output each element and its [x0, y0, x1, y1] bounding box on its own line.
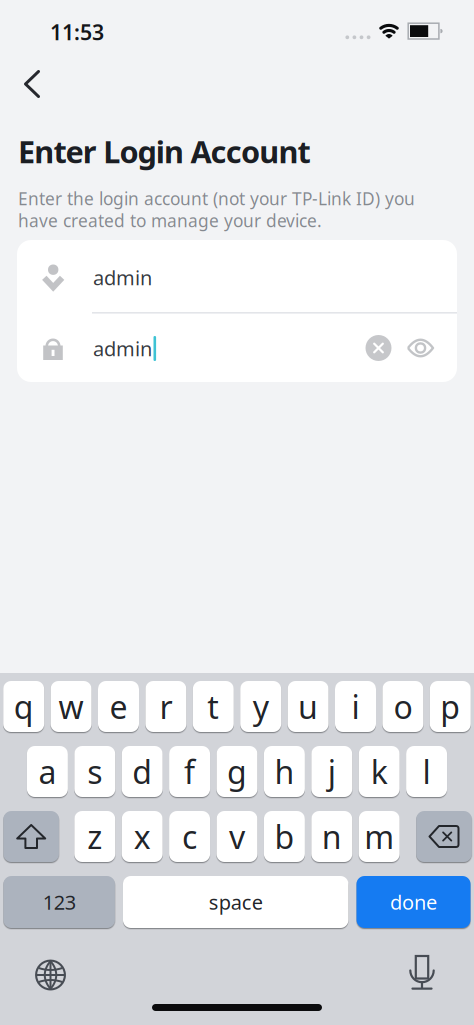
- button[interactable]: h: [264, 746, 305, 797]
- button[interactable]: Clear text: [365, 335, 391, 361]
- staticText: f: [184, 750, 195, 793]
- button[interactable]: r: [145, 681, 186, 732]
- staticText: k: [371, 750, 388, 793]
- staticText: admin: [93, 264, 152, 291]
- staticText: e: [109, 685, 127, 728]
- staticText: x: [134, 815, 151, 858]
- button[interactable]: e: [98, 681, 139, 732]
- button[interactable]: o: [382, 681, 423, 732]
- button[interactable]: Dictation: [405, 956, 439, 990]
- staticText: 11:53: [50, 18, 104, 46]
- button[interactable]: x: [122, 811, 163, 862]
- staticText: p: [440, 685, 460, 728]
- button[interactable]: k: [359, 746, 400, 797]
- button[interactable]: p: [430, 681, 471, 732]
- staticText: z: [87, 815, 102, 858]
- button[interactable]: f: [169, 746, 210, 797]
- staticText: v: [229, 815, 245, 858]
- staticText: g: [227, 750, 247, 793]
- staticText: d: [132, 750, 152, 793]
- button[interactable]: w: [51, 681, 92, 732]
- staticText: a: [38, 750, 56, 793]
- staticText: have created to manage your device.: [18, 209, 322, 232]
- staticText: 123: [43, 889, 76, 915]
- button[interactable]: d: [122, 746, 163, 797]
- staticText: admin: [93, 335, 152, 362]
- button[interactable]: a: [27, 746, 68, 797]
- staticText: Enter Login Account: [18, 131, 311, 172]
- button[interactable]: t: [193, 681, 234, 732]
- staticText: m: [364, 815, 394, 858]
- staticText: done: [390, 889, 437, 915]
- button[interactable]: c: [169, 811, 210, 862]
- staticText: q: [14, 685, 34, 728]
- staticText: i: [351, 685, 359, 728]
- staticText: c: [182, 815, 197, 858]
- button[interactable]: Back: [12, 59, 62, 109]
- staticText: l: [423, 750, 431, 793]
- staticText: o: [393, 685, 412, 728]
- button[interactable]: s: [74, 746, 115, 797]
- button[interactable]: Next keyboard: [35, 960, 65, 990]
- button[interactable]: l: [406, 746, 447, 797]
- staticText: b: [274, 815, 294, 858]
- staticText: Enter the login account (not your TP-Lin…: [18, 187, 415, 210]
- button[interactable]: Password field: [93, 323, 343, 373]
- button[interactable]: m: [359, 811, 400, 862]
- staticText: u: [298, 685, 318, 728]
- staticText: n: [322, 815, 342, 858]
- button[interactable]: done: [356, 876, 470, 928]
- staticText: s: [87, 750, 102, 793]
- staticText: j: [328, 750, 336, 793]
- button[interactable]: i: [335, 681, 376, 732]
- button[interactable]: j: [311, 746, 352, 797]
- button[interactable]: y: [240, 681, 281, 732]
- button[interactable]: Shift: [3, 811, 59, 862]
- staticText: y: [253, 685, 269, 728]
- button[interactable]: z: [74, 811, 115, 862]
- staticText: h: [274, 750, 294, 793]
- button[interactable]: g: [216, 746, 257, 797]
- button[interactable]: b: [264, 811, 305, 862]
- button[interactable]: Delete: [416, 811, 472, 862]
- staticText: t: [207, 685, 219, 728]
- button[interactable]: q: [3, 681, 44, 732]
- staticText: r: [159, 685, 172, 728]
- button[interactable]: space: [123, 876, 348, 928]
- button[interactable]: n: [311, 811, 352, 862]
- staticText: w: [59, 685, 84, 728]
- button[interactable]: 123: [3, 876, 115, 928]
- button[interactable]: u: [288, 681, 329, 732]
- button[interactable]: Show password: [406, 339, 434, 357]
- button[interactable]: v: [216, 811, 257, 862]
- button[interactable]: Username field: [93, 252, 343, 302]
- staticText: space: [209, 889, 263, 915]
